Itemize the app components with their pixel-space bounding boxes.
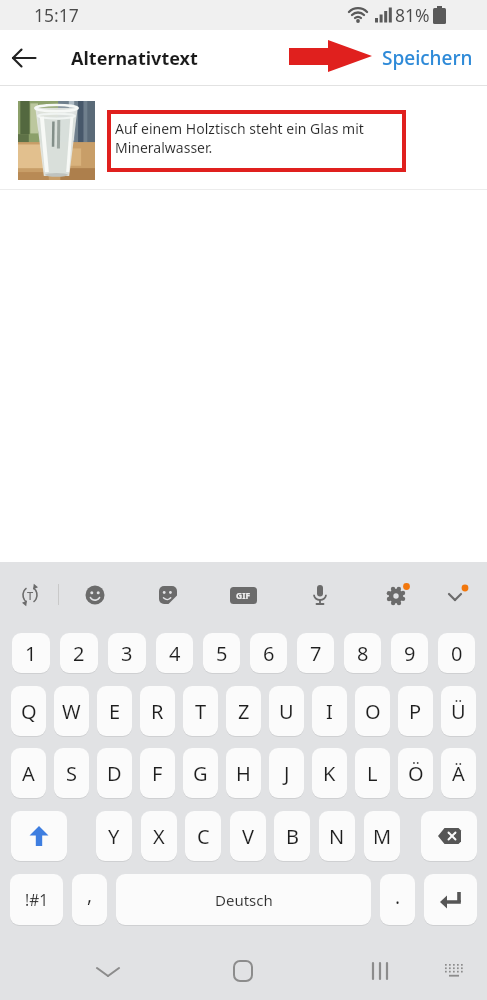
button[interactable]: [358, 949, 402, 993]
button[interactable]: X: [141, 811, 177, 861]
button[interactable]: 1: [12, 633, 50, 673]
staticText: P: [409, 698, 422, 725]
staticText: 8: [357, 640, 369, 667]
staticText: Y: [108, 823, 120, 850]
button[interactable]: 6: [250, 633, 287, 673]
staticText: G: [193, 760, 208, 787]
button[interactable]: S: [54, 748, 89, 798]
button[interactable]: Y: [96, 811, 132, 861]
staticText: D: [107, 760, 122, 787]
staticText: GIF: [236, 590, 251, 602]
button[interactable]: Q: [11, 686, 46, 736]
staticText: U: [279, 698, 294, 725]
staticText: C: [197, 823, 210, 850]
staticText: L: [367, 760, 378, 787]
button[interactable]: I: [312, 686, 347, 736]
button[interactable]: 9: [391, 633, 428, 673]
button[interactable]: !#1: [10, 874, 63, 925]
staticText: 5: [216, 640, 228, 667]
button[interactable]: A: [11, 748, 46, 798]
button[interactable]: Ö: [398, 748, 433, 798]
staticText: Speichern: [382, 45, 473, 71]
staticText: Auf einem Holztisch steht ein Glas mit: [115, 119, 364, 138]
button[interactable]: M: [364, 811, 400, 861]
button[interactable]: H: [226, 748, 261, 798]
button[interactable]: B: [274, 811, 310, 861]
staticText: H: [236, 760, 251, 787]
button[interactable]: 7: [297, 633, 334, 673]
button[interactable]: ,: [72, 874, 107, 925]
button[interactable]: [379, 577, 415, 613]
button[interactable]: [424, 874, 477, 925]
staticText: Ö: [408, 760, 424, 787]
button[interactable]: [150, 577, 186, 613]
staticText: ,: [87, 882, 93, 908]
staticText: Ü: [451, 698, 466, 725]
button[interactable]: K: [312, 748, 347, 798]
button[interactable]: W: [54, 686, 89, 736]
button[interactable]: L: [355, 748, 390, 798]
staticText: T: [27, 588, 34, 603]
button[interactable]: Auf einem Holztisch steht ein Glas mit: [107, 110, 406, 172]
staticText: 6: [263, 640, 275, 667]
button[interactable]: G: [183, 748, 218, 798]
staticText: T: [195, 698, 207, 725]
button[interactable]: 8: [344, 633, 381, 673]
button[interactable]: Ä: [441, 748, 476, 798]
button[interactable]: [437, 577, 473, 613]
button[interactable]: P: [398, 686, 433, 736]
button[interactable]: [302, 577, 338, 613]
staticText: Ä: [452, 760, 465, 787]
button[interactable]: 0: [438, 633, 475, 673]
button[interactable]: U: [269, 686, 304, 736]
staticText: E: [109, 698, 121, 725]
button[interactable]: [221, 949, 265, 993]
staticText: Q: [21, 698, 37, 725]
staticText: S: [66, 760, 77, 787]
button[interactable]: Z: [226, 686, 261, 736]
button[interactable]: N: [319, 811, 355, 861]
staticText: B: [286, 823, 299, 850]
button[interactable]: 2: [60, 633, 98, 673]
button[interactable]: [0, 34, 48, 82]
staticText: A: [22, 760, 35, 787]
button[interactable]: R: [140, 686, 175, 736]
button[interactable]: 4: [156, 633, 193, 673]
button[interactable]: 3: [108, 633, 146, 673]
button[interactable]: O: [355, 686, 390, 736]
button[interactable]: J: [269, 748, 304, 798]
staticText: O: [365, 698, 381, 725]
button[interactable]: [77, 577, 113, 613]
button[interactable]: F: [140, 748, 175, 798]
button[interactable]: Deutsch: [116, 874, 371, 925]
button[interactable]: [434, 951, 474, 991]
button[interactable]: [421, 811, 477, 861]
staticText: 1: [25, 640, 37, 667]
staticText: Deutsch: [215, 890, 273, 910]
staticText: R: [151, 698, 164, 725]
staticText: V: [242, 823, 254, 850]
staticText: 3: [121, 640, 133, 667]
staticText: W: [62, 698, 81, 725]
staticText: 4: [169, 640, 181, 667]
button[interactable]: .: [380, 874, 415, 925]
button[interactable]: GIF: [225, 577, 261, 613]
staticText: 2: [73, 640, 85, 667]
button[interactable]: [11, 811, 67, 861]
staticText: 9: [404, 640, 416, 667]
button[interactable]: D: [97, 748, 132, 798]
staticText: F: [152, 760, 163, 787]
button[interactable]: T: [12, 577, 48, 613]
button[interactable]: C: [185, 811, 221, 861]
button[interactable]: E: [97, 686, 132, 736]
button[interactable]: [86, 949, 130, 993]
button[interactable]: Ü: [441, 686, 476, 736]
button[interactable]: T: [183, 686, 218, 736]
staticText: 81%: [395, 3, 430, 27]
staticText: Mineralwasser.: [115, 138, 213, 157]
staticText: 15:17: [34, 3, 79, 27]
button[interactable]: Speichern: [382, 45, 473, 71]
button[interactable]: 5: [203, 633, 240, 673]
staticText: N: [329, 823, 345, 850]
button[interactable]: V: [230, 811, 266, 861]
